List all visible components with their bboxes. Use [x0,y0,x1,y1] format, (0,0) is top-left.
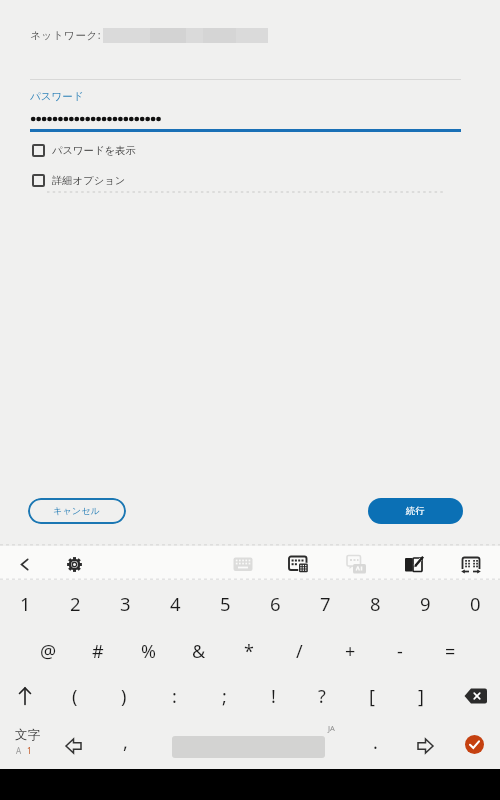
button[interactable] [287,552,313,578]
button[interactable] [461,680,493,712]
button[interactable]: - [375,633,425,669]
button[interactable]: # [73,633,123,669]
button[interactable]: 2 [50,585,100,621]
staticText: パスワード [30,90,84,103]
button[interactable] [231,552,256,577]
staticText: ] [418,684,424,709]
staticText: 2 [70,591,81,616]
staticText: ; [222,684,227,709]
button[interactable] [411,732,439,760]
button[interactable]: ] [398,678,444,714]
staticText: - [397,639,403,664]
staticText: / [296,639,303,664]
button[interactable] [9,680,41,712]
button[interactable] [12,552,37,577]
staticText: ! [271,684,276,709]
button[interactable] [32,174,45,187]
button[interactable] [465,735,484,754]
staticText: 6 [270,591,281,616]
staticText: = [445,639,456,664]
button[interactable]: 9 [400,585,450,621]
staticText: 5 [220,591,231,616]
button[interactable]: = [425,633,475,669]
button[interactable]: & [174,633,224,669]
button[interactable]: 8 [350,585,400,621]
button[interactable]: ) [101,678,147,714]
button[interactable]: ! [250,678,296,714]
staticText: 文字 [15,727,40,743]
staticText: 続行 [406,505,425,517]
button[interactable] [62,552,87,577]
staticText: 7 [320,591,331,616]
staticText: 9 [420,591,431,616]
staticText: パスワードを表示 [52,144,136,157]
staticText: @ [40,639,57,664]
staticText: : [172,684,177,709]
staticText: ? [318,684,326,709]
staticText: * [244,639,254,664]
button[interactable]: ( [52,678,98,714]
button[interactable]: 3 [100,585,150,621]
staticText: 4 [170,591,181,616]
button[interactable] [344,551,369,576]
staticText: 1 [27,745,32,756]
staticText: + [345,639,356,664]
button[interactable] [459,551,485,577]
button[interactable]: % [123,633,173,669]
staticText: 0 [470,591,481,616]
button[interactable] [401,551,426,576]
button[interactable]: * [224,633,274,669]
staticText: JA [328,723,335,733]
button[interactable]: 5 [200,585,250,621]
staticText: # [92,639,104,664]
button[interactable]: 6 [250,585,300,621]
staticText: % [141,639,156,664]
staticText: 8 [370,591,381,616]
staticText: 3 [120,591,131,616]
button[interactable]: 続行 [368,498,463,524]
staticText: A [16,745,22,756]
button[interactable] [32,144,45,157]
button[interactable]: , [105,725,145,759]
button[interactable]: 4 [150,585,200,621]
button[interactable]: 1 [0,585,50,621]
button[interactable]: 0 [450,585,500,621]
staticText: . [373,730,378,755]
staticText: , [123,730,128,755]
staticText: ( [72,684,78,709]
button[interactable] [60,732,88,760]
staticText: 詳細オプション [52,174,126,187]
button[interactable]: + [325,633,375,669]
button[interactable]: / [274,633,324,669]
button[interactable]: [ [349,678,395,714]
staticText: キャンセル [53,505,101,517]
button[interactable]: @ [23,633,73,669]
button[interactable]: 7 [300,585,350,621]
staticText: 1 [20,591,31,616]
button[interactable]: ; [201,678,247,714]
staticText: ネットワーク: [30,28,102,42]
staticText: ) [121,684,127,709]
button[interactable]: キャンセル [28,498,126,524]
staticText: [ [369,684,375,709]
button[interactable]: : [151,678,197,714]
staticText: & [192,639,206,664]
button[interactable] [5,725,50,763]
button[interactable]: . [355,725,395,759]
button[interactable]: ? [299,678,345,714]
